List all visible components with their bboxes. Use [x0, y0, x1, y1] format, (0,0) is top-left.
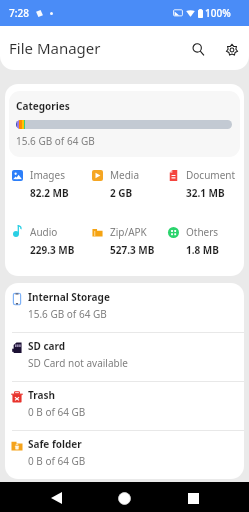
button[interactable]: Others — [164, 225, 244, 257]
button[interactable]: Trash — [5, 382, 244, 430]
button[interactable]: Search — [183, 34, 213, 64]
staticText: Media — [110, 168, 140, 182]
staticText: 229.3 MB — [30, 243, 75, 257]
staticText: 82.2 MB — [30, 186, 69, 200]
staticText: File Manager — [9, 38, 101, 58]
staticText: 527.3 MB — [110, 243, 155, 257]
staticText: 7:28 — [9, 6, 29, 20]
button[interactable]: Safe folder — [5, 431, 244, 479]
button[interactable]: Audio — [5, 225, 84, 257]
staticText: Zip/APK — [110, 225, 147, 239]
staticText: Internal Storage — [28, 290, 110, 304]
staticText: 1.8 MB — [186, 243, 219, 257]
staticText: 0 B of 64 GB — [28, 405, 86, 419]
staticText: SD card — [28, 339, 66, 353]
staticText: 2 GB — [110, 186, 133, 200]
button[interactable]: Home — [109, 483, 139, 512]
staticText: Trash — [28, 388, 56, 402]
staticText: Document — [186, 168, 236, 182]
button[interactable]: Zip/APK — [84, 225, 164, 257]
staticText: 32.1 MB — [186, 186, 225, 200]
staticText: 15.6 GB of 64 GB — [16, 134, 95, 148]
staticText: Safe folder — [28, 437, 82, 451]
staticText: 100% — [205, 6, 231, 20]
staticText: Audio — [30, 225, 58, 239]
button[interactable]: SD card — [5, 333, 244, 381]
staticText: 15.6 GB of 64 GB — [28, 307, 107, 321]
staticText: 0 B of 64 GB — [28, 454, 86, 468]
button[interactable]: Recents — [178, 483, 208, 512]
staticText: Others — [186, 225, 219, 239]
staticText: Categories — [16, 99, 70, 113]
button[interactable]: Images — [5, 168, 84, 200]
button[interactable]: Internal Storage — [5, 284, 244, 332]
button[interactable]: Media — [84, 168, 164, 200]
button[interactable]: Back — [41, 483, 71, 512]
button[interactable]: Settings — [217, 35, 247, 65]
staticText: Images — [30, 168, 65, 182]
button[interactable]: Document — [164, 168, 244, 200]
staticText: SD Card not available — [28, 356, 128, 370]
